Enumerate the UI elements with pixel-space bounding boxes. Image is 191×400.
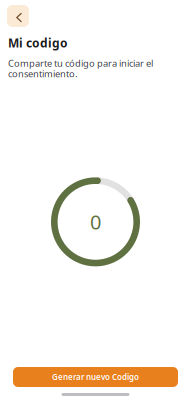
button[interactable]: Generar nuevo Codigo	[13, 367, 178, 387]
staticText: Generar nuevo Codigo	[52, 372, 139, 382]
staticText: 0	[90, 209, 101, 235]
staticText: Comparte tu código para iniciar el	[8, 57, 153, 69]
button[interactable]: Back	[7, 5, 29, 27]
staticText: Mi codigo	[8, 35, 68, 51]
staticText: consentimiento.	[8, 67, 78, 80]
